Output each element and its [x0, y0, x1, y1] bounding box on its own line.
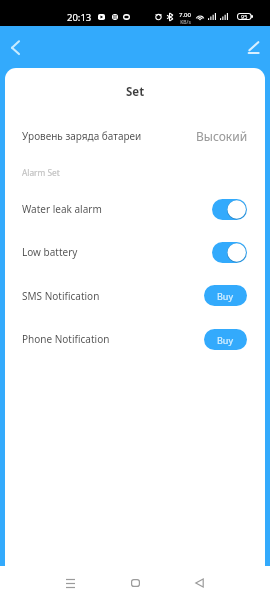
staticText: Buy [217, 290, 234, 302]
button[interactable]: Buy [204, 329, 247, 350]
staticText: Low battery [22, 245, 78, 259]
staticText: SMS Notification [22, 289, 100, 303]
staticText: 20:13 [67, 11, 92, 24]
button[interactable]: Water leak alarm [212, 199, 247, 220]
staticText: 95 [241, 13, 248, 20]
staticText: Уровень заряда батареи [22, 129, 142, 143]
staticText: KB/s [180, 19, 191, 26]
button[interactable]: Edit [238, 28, 270, 60]
staticText: Buy [217, 334, 234, 346]
button[interactable]: Home [119, 567, 151, 599]
staticText: Высокий [196, 128, 248, 144]
button[interactable]: Back [183, 567, 215, 599]
button[interactable]: Buy [204, 285, 247, 306]
button[interactable]: Back [0, 28, 32, 60]
button[interactable]: Low battery [212, 242, 247, 263]
staticText: 7.00 [179, 11, 191, 19]
staticText: Water leak alarm [22, 202, 102, 216]
staticText: Set [126, 84, 145, 100]
staticText: Alarm Set [22, 167, 60, 178]
staticText: Phone Notification [22, 332, 110, 346]
button[interactable]: Recent apps [54, 567, 86, 599]
